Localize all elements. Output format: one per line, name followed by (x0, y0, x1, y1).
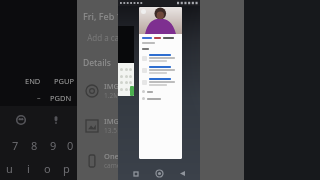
staticText: i (27, 161, 30, 176)
button[interactable] (142, 78, 179, 86)
button[interactable]: p (57, 157, 76, 180)
staticText: PGDN (50, 93, 72, 103)
button[interactable]: 9 (44, 133, 63, 157)
button[interactable]: Voice input (50, 114, 62, 126)
button[interactable]: Profile (141, 9, 146, 14)
button[interactable] (142, 66, 179, 74)
button[interactable]: i (19, 157, 38, 180)
button[interactable]: o (38, 157, 57, 180)
staticText: IMG (104, 116, 119, 126)
button[interactable] (120, 68, 123, 71)
staticText: 8 (31, 138, 38, 153)
staticText: p (63, 161, 70, 176)
staticText: 9 (50, 138, 57, 153)
staticText: 0 (67, 138, 74, 153)
staticText: o (44, 161, 51, 176)
button[interactable] (120, 88, 123, 91)
staticText: 13.5 MB (104, 126, 129, 135)
button[interactable]: IMG (83, 116, 244, 135)
staticText: Add a caption (83, 32, 139, 43)
staticText: 7 (12, 138, 19, 153)
button[interactable]: OnePlus (83, 151, 244, 170)
button[interactable]: Profile (139, 7, 182, 159)
staticText: PGUP (54, 76, 75, 86)
button[interactable]: 7 (6, 133, 25, 157)
button[interactable] (125, 88, 128, 91)
button[interactable] (125, 75, 128, 78)
button[interactable] (129, 88, 132, 91)
staticText: 1.2MP (104, 91, 124, 100)
staticText: IMG (104, 81, 119, 91)
button[interactable] (120, 75, 123, 78)
button[interactable]: Back (176, 167, 189, 180)
button[interactable] (125, 81, 128, 84)
button[interactable] (125, 68, 128, 71)
staticText: camera (104, 161, 127, 170)
button[interactable]: Recents (129, 167, 142, 180)
button[interactable]: Emoji (15, 114, 27, 126)
button[interactable]: 0 (63, 133, 77, 157)
button[interactable] (142, 90, 179, 93)
staticText: – (37, 93, 41, 103)
button[interactable]: Home (153, 167, 166, 180)
button[interactable] (142, 54, 179, 62)
button[interactable] (142, 97, 179, 100)
button[interactable] (129, 68, 132, 71)
button[interactable]: IMG (83, 81, 244, 100)
button[interactable]: 8 (25, 133, 44, 157)
staticText: END (25, 76, 41, 86)
button[interactable] (129, 75, 132, 78)
staticText: u (6, 161, 13, 176)
button[interactable]: Call (130, 86, 134, 96)
staticText: Fri, Feb 13, (83, 10, 130, 22)
staticText: Details (83, 57, 111, 69)
button[interactable] (129, 81, 132, 84)
button[interactable]: u (0, 157, 19, 180)
button[interactable] (120, 81, 123, 84)
staticText: OnePlus (104, 151, 134, 161)
